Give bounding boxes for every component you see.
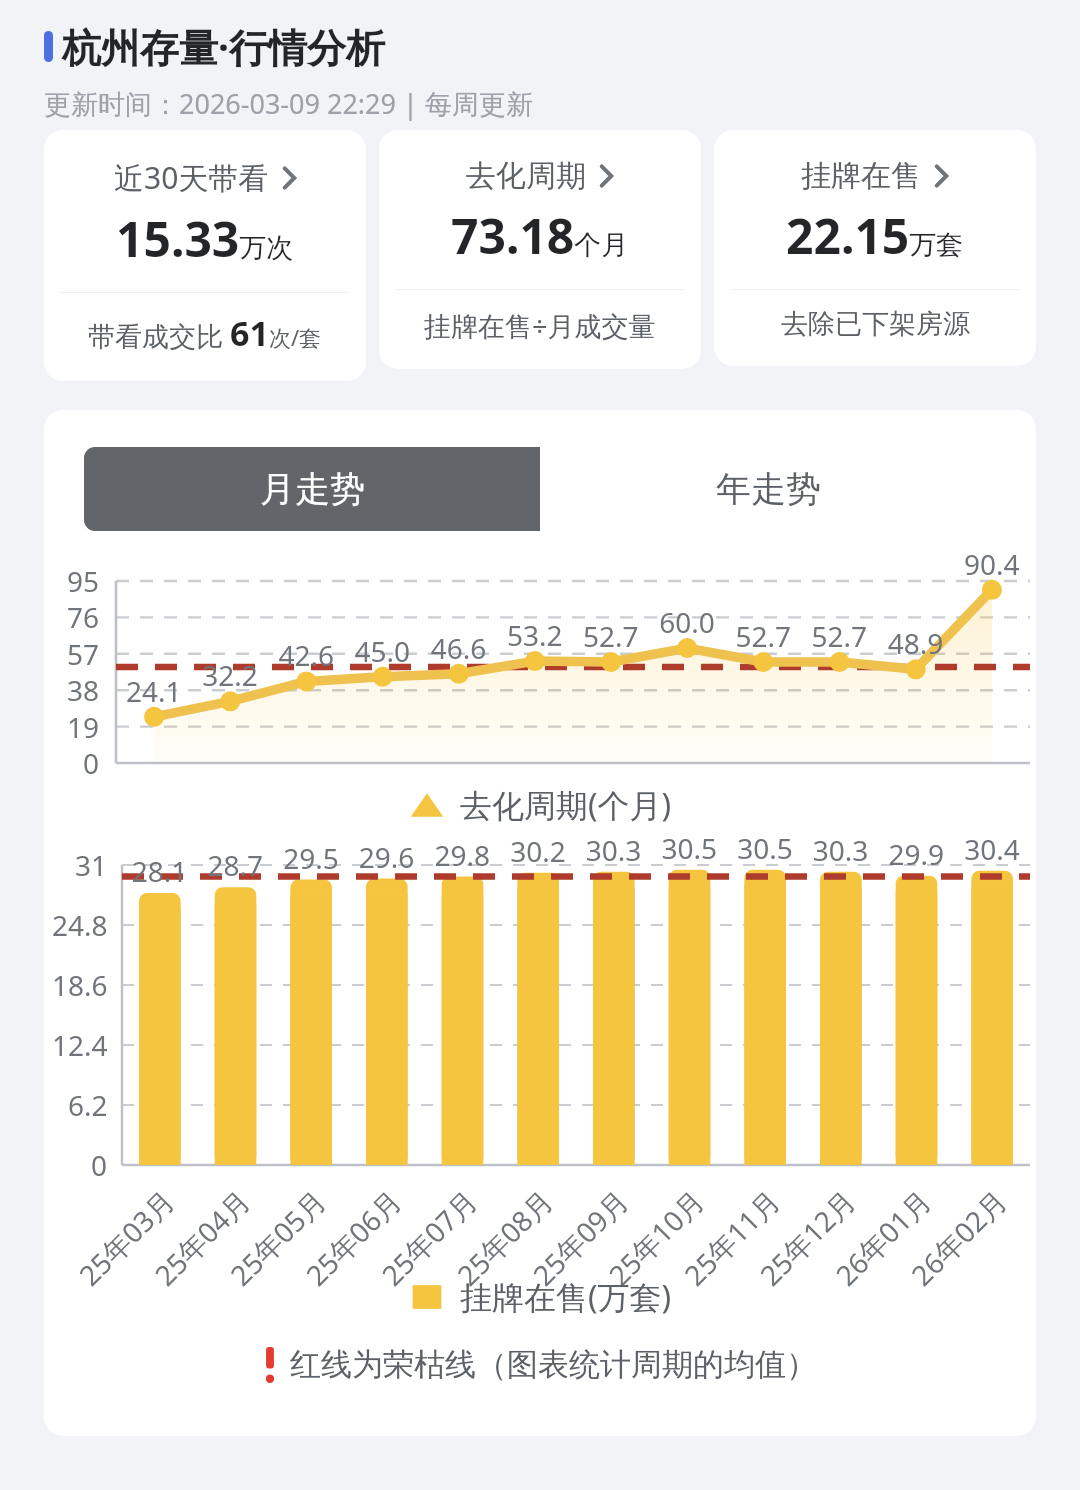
- staticText: 红线为荣枯线（图表统计周期的均值）: [290, 1345, 817, 1384]
- staticText: 挂牌在售÷月成交量: [424, 307, 656, 344]
- button[interactable]: 去化周期: [379, 130, 701, 369]
- staticText: 去除已下架房源: [781, 307, 970, 341]
- staticText: 杭州存量·行情分析: [62, 20, 385, 73]
- staticText: 15.33万次: [116, 206, 294, 271]
- staticText: 带看成交比 61次/套: [88, 310, 322, 356]
- staticText: 更新时间：2026-03-09 22:29 | 每周更新: [44, 85, 533, 122]
- staticText: 22.15万套: [786, 203, 964, 268]
- staticText: 挂牌在售: [801, 157, 921, 195]
- staticText: 去化周期(个月): [460, 783, 672, 827]
- button[interactable]: 挂牌在售: [714, 130, 1036, 366]
- other: 查看详情: [599, 164, 614, 188]
- staticText: 73.18个月: [451, 203, 629, 268]
- other: 查看详情: [282, 166, 297, 190]
- staticText: 近30天带看: [114, 157, 269, 198]
- button[interactable]: 年走势: [540, 447, 996, 531]
- button[interactable]: 月走势: [84, 447, 540, 531]
- staticText: 年走势: [716, 467, 821, 511]
- button[interactable]: 近30天带看: [44, 130, 366, 381]
- staticText: 月走势: [260, 467, 365, 511]
- other: 查看详情: [934, 164, 949, 188]
- staticText: 挂牌在售(万套): [460, 1275, 672, 1319]
- staticText: 去化周期: [466, 157, 586, 195]
